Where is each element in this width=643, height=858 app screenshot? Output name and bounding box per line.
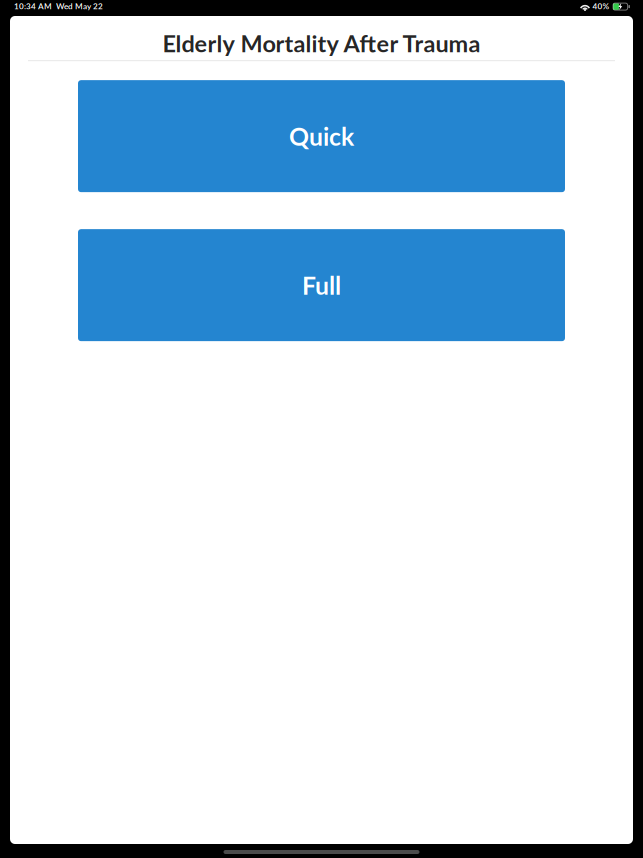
- staticText: Quick: [289, 121, 354, 151]
- button[interactable]: Full: [78, 229, 565, 341]
- staticText: Full: [302, 270, 341, 300]
- staticText: 10:34 AM: [14, 1, 52, 11]
- staticText: Elderly Mortality After Trauma: [162, 29, 480, 57]
- staticText: Wed May 22: [56, 1, 103, 11]
- staticText: 40%: [592, 1, 609, 11]
- button[interactable]: Quick: [78, 80, 565, 192]
